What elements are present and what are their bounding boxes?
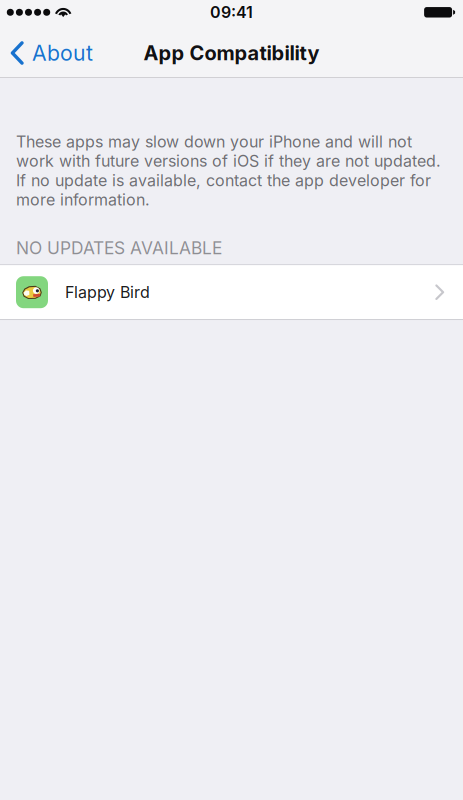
staticText: work with future versions of iOS if they…: [16, 151, 441, 171]
button[interactable]: About: [0, 31, 113, 75]
staticText: If no update is available, contact the a…: [16, 171, 431, 190]
staticText: more information.: [16, 190, 150, 209]
staticText: NO UPDATES AVAILABLE: [16, 237, 222, 258]
staticText: These apps may slow down your iPhone and…: [16, 132, 412, 151]
button[interactable]: Flappy Bird: [0, 265, 463, 319]
staticText: App Compatibility: [143, 41, 319, 65]
staticText: Flappy Bird: [65, 282, 150, 302]
staticText: About: [32, 40, 93, 66]
staticText: 09:41: [210, 3, 253, 22]
